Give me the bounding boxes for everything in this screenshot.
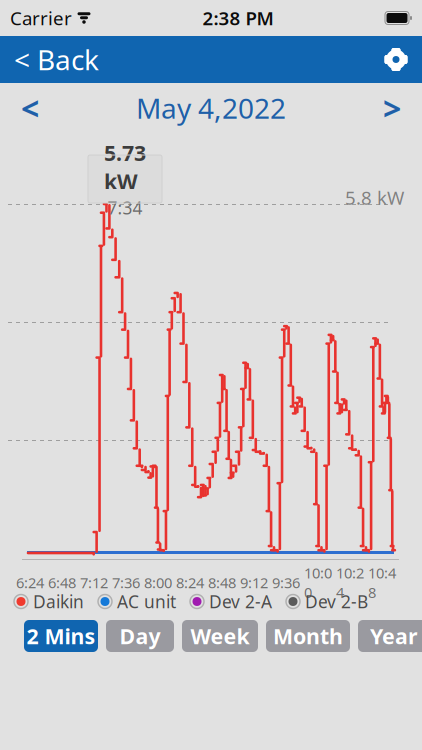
staticText: 10:48 <box>368 563 396 602</box>
staticText: Carrier <box>10 6 72 30</box>
staticText: 9:36 <box>272 573 300 592</box>
staticText: Year <box>370 622 418 650</box>
staticText: Dev 2-B <box>305 590 368 613</box>
staticText: 6:24 <box>16 573 44 592</box>
button[interactable]: AC unit <box>98 590 176 613</box>
staticText: Dev 2-A <box>209 590 272 613</box>
staticText: 8:00 <box>144 573 172 592</box>
staticText: < <box>21 87 39 129</box>
button[interactable]: Year <box>358 620 422 652</box>
staticText: > <box>383 87 401 129</box>
staticText: Month <box>273 622 343 650</box>
staticText: < Back <box>14 41 99 78</box>
button[interactable]: Previous day <box>0 83 60 133</box>
staticText: Week <box>190 622 249 650</box>
staticText: Day <box>119 622 160 650</box>
staticText: 5.8 kW <box>345 185 404 210</box>
button[interactable]: Day <box>106 620 174 652</box>
staticText: 6:48 <box>48 573 76 592</box>
staticText: 7:34 <box>107 196 142 219</box>
staticText: 2 Mins <box>26 622 95 650</box>
button[interactable]: Settings <box>370 36 422 83</box>
button[interactable]: Week <box>182 620 258 652</box>
staticText: 8:48 <box>208 573 236 592</box>
staticText: 5.73 kW <box>104 139 146 195</box>
button[interactable]: Month <box>266 620 350 652</box>
button[interactable]: Daikin <box>14 590 84 613</box>
button[interactable]: Dev 2-A <box>190 590 272 613</box>
staticText: 7:12 <box>80 573 108 592</box>
button[interactable]: Next day <box>362 83 422 133</box>
button[interactable]: May 4,2022 <box>136 83 286 133</box>
staticText: 10:00 <box>304 563 332 602</box>
button[interactable]: 2 Mins <box>24 620 98 652</box>
staticText: 10:24 <box>336 563 364 602</box>
staticText: 8:24 <box>176 573 204 592</box>
button[interactable]: < Back <box>0 36 113 83</box>
staticText: AC unit <box>117 590 176 613</box>
staticText: 2:38 PM <box>202 6 273 30</box>
staticText: 9:12 <box>240 573 268 592</box>
staticText: Daikin <box>33 590 84 613</box>
staticText: 7:36 <box>112 573 140 592</box>
staticText: May 4,2022 <box>136 89 286 127</box>
button[interactable]: Dev 2-B <box>286 590 368 613</box>
